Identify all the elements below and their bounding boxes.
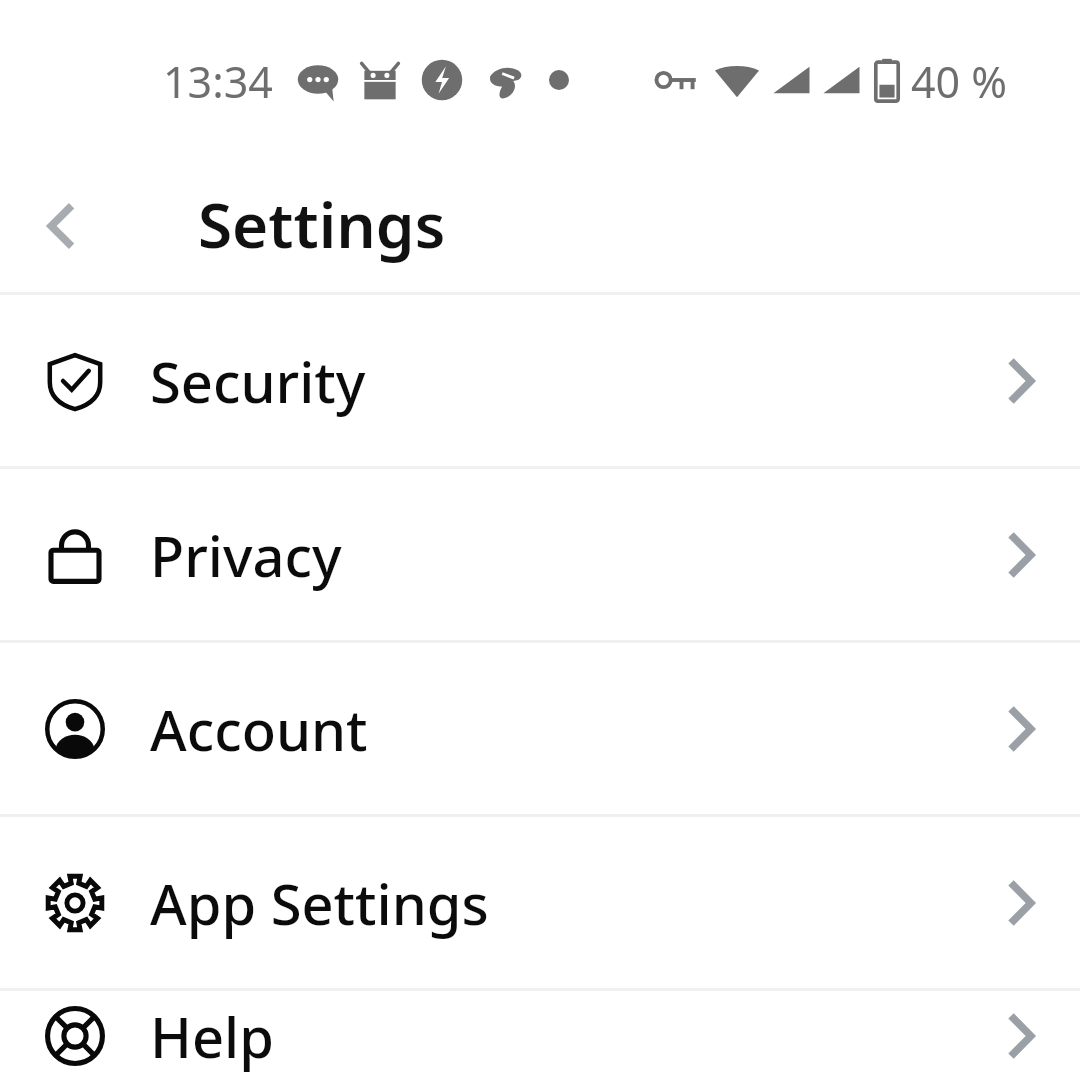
staticText: Security [150, 343, 960, 419]
staticText: 13:34 [163, 52, 273, 108]
button[interactable]: Account [0, 643, 1080, 814]
button[interactable]: App Settings [0, 817, 1080, 988]
staticText: App Settings [150, 865, 960, 941]
button[interactable]: Privacy [0, 469, 1080, 640]
staticText: 40 % [911, 52, 1008, 108]
staticText: Account [150, 691, 960, 767]
button[interactable]: Back [14, 178, 110, 274]
staticText: Help [150, 998, 960, 1074]
staticText: Settings [198, 182, 446, 266]
button[interactable]: Security [0, 295, 1080, 466]
staticText: Privacy [150, 517, 960, 593]
button[interactable]: Help [0, 991, 1080, 1080]
